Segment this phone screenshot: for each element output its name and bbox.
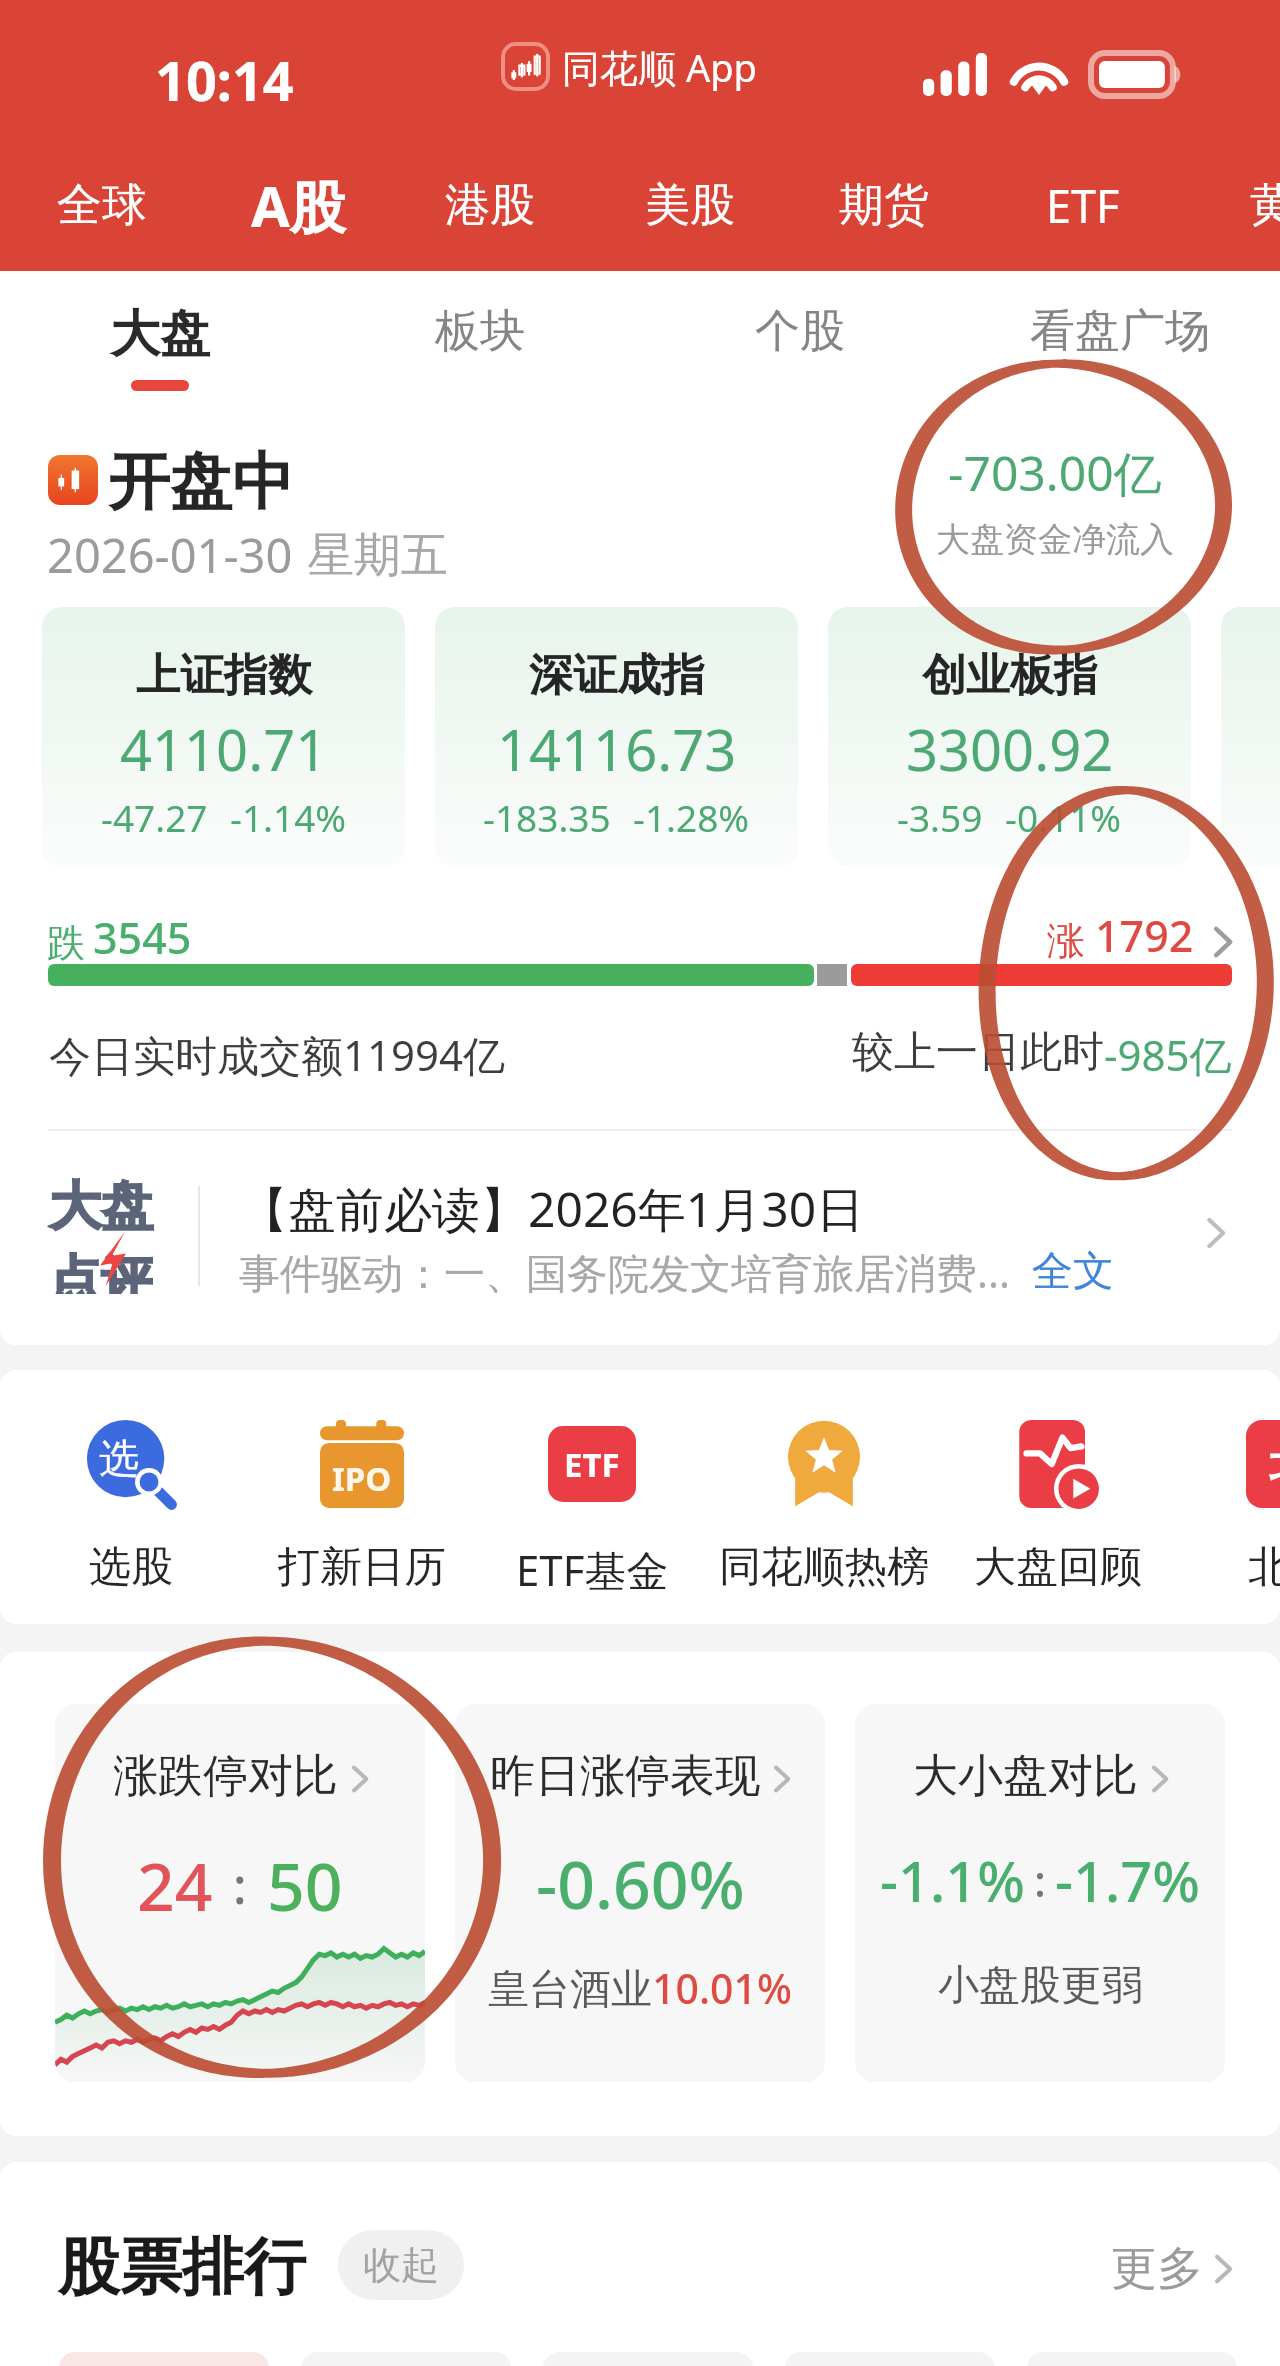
staticText: 14116.73 <box>497 711 737 787</box>
staticText: 开盘中 <box>108 443 294 521</box>
staticText: -1.7% <box>1055 1842 1200 1918</box>
staticText: 选股 <box>89 1541 173 1594</box>
button[interactable]: 上证指数 <box>42 607 405 867</box>
staticText: -0.60% <box>536 1838 745 1928</box>
staticText: 跌 <box>47 919 85 967</box>
staticText: 北 <box>1269 1438 1280 1491</box>
button[interactable]: 创业板指 <box>828 607 1191 867</box>
staticText: 小盘股更弱 <box>938 1960 1143 2012</box>
button[interactable]: 板块 <box>320 280 640 400</box>
button[interactable]: 港股 <box>415 158 565 252</box>
button[interactable]: 大盘 <box>0 280 320 400</box>
staticText: ETF <box>1046 175 1120 236</box>
staticText: 港股 <box>445 177 535 234</box>
staticText: 选 <box>99 1433 139 1483</box>
staticText: 1792 <box>1095 906 1194 965</box>
staticText: 4110.71 <box>120 711 328 787</box>
staticText: 大盘 <box>49 1174 153 1240</box>
staticText: ETF <box>564 1442 620 1487</box>
staticText: 大盘 <box>110 303 210 366</box>
button[interactable]: 大盘 <box>0 1160 1280 1315</box>
staticText: 大盘回顾 <box>974 1541 1142 1594</box>
staticText: 打新日历 <box>278 1541 446 1594</box>
staticText: 上证指数 <box>136 648 312 703</box>
staticText: 昨日涨停表现 <box>490 1748 760 1805</box>
staticText: A股 <box>251 167 346 243</box>
staticText: 股票排行 <box>58 2228 306 2306</box>
staticText: 创业板指 <box>922 648 1098 703</box>
button[interactable]: 全球 <box>27 158 177 252</box>
staticText: 星期五 <box>307 526 448 585</box>
button[interactable]: ETF <box>1008 158 1158 252</box>
staticText: 今日实时成交额11994亿 <box>49 1026 506 1083</box>
button[interactable]: 看盘广场 <box>960 280 1280 400</box>
staticText: 全文 <box>1032 1246 1114 1298</box>
staticText: 10.01% <box>652 1960 792 2016</box>
button[interactable]: 大盘回顾 <box>943 1409 1173 1599</box>
staticText: 同花顺热榜 <box>719 1541 929 1594</box>
staticText: 北交 <box>1248 1541 1280 1594</box>
staticText: 板块 <box>435 303 525 360</box>
button[interactable]: ETF <box>477 1409 707 1599</box>
staticText: 同花顺 App <box>562 41 757 93</box>
staticText: -1.28% <box>633 792 750 842</box>
button[interactable]: 美股 <box>615 158 765 252</box>
staticText: 深证成指 <box>529 648 705 703</box>
staticText: ETF基金 <box>516 1541 669 1598</box>
button[interactable]: 大小盘对比 <box>855 1704 1225 2082</box>
staticText: 看盘广场 <box>1030 303 1210 360</box>
button[interactable]: 北 <box>1175 1409 1280 1599</box>
staticText: -985亿 <box>1104 1026 1232 1083</box>
button[interactable]: 收起 <box>338 2230 464 2300</box>
staticText: -0.11% <box>1005 792 1122 842</box>
staticText: 更多 <box>1111 2240 1203 2298</box>
button[interactable]: 更多 <box>1050 2240 1232 2298</box>
staticText: 【盘前必读】2026年1月30日 <box>240 1176 865 1242</box>
staticText: -47.27 <box>101 792 208 842</box>
staticText: 10:14 <box>155 43 294 117</box>
staticText: 24 <box>137 1840 213 1930</box>
staticText: 收起 <box>363 2241 439 2289</box>
staticText: 3545 <box>93 908 192 967</box>
button[interactable]: IPO <box>247 1409 477 1599</box>
staticText: 个股 <box>755 303 845 360</box>
staticText: 期货 <box>839 177 929 234</box>
button[interactable]: 黄 <box>1197 158 1280 252</box>
button[interactable]: 选 <box>16 1409 246 1599</box>
staticText: 全球 <box>57 177 147 234</box>
button[interactable]: 昨日涨停表现 <box>455 1704 825 2082</box>
staticText: 2026-01-30 <box>47 523 293 587</box>
staticText: 涨跌停对比 <box>113 1748 338 1805</box>
staticText: 较上一日此时 <box>852 1026 1104 1079</box>
button[interactable]: 深证成指 <box>435 607 798 867</box>
staticText: -183.35 <box>483 792 611 842</box>
staticText: : <box>233 1851 247 1919</box>
staticText: IPO <box>332 1456 392 1501</box>
staticText: -3.59 <box>897 792 983 842</box>
button[interactable] <box>59 2352 269 2366</box>
staticText: -703.00亿 <box>948 440 1162 506</box>
staticText: : <box>1034 1850 1046 1910</box>
staticText: -1.1% <box>880 1842 1025 1918</box>
button[interactable]: A股 <box>218 158 378 252</box>
staticText: 皇台酒业 <box>488 1964 652 2016</box>
staticText: 大小盘对比 <box>913 1748 1138 1805</box>
staticText: 黄 <box>1250 177 1280 234</box>
staticText: 涨 <box>1047 917 1085 965</box>
button[interactable]: 个股 <box>640 280 960 400</box>
button[interactable]: 涨跌停对比 <box>55 1704 425 2082</box>
staticText: 50 <box>267 1840 343 1930</box>
staticText: 大盘资金净流入 <box>936 518 1174 561</box>
button[interactable]: 期货 <box>809 158 959 252</box>
staticText: -1.14% <box>230 792 347 842</box>
staticText: 点评 <box>49 1248 153 1294</box>
staticText: 美股 <box>645 177 735 234</box>
staticText: 事件驱动：一、国务院发文培育旅居消费... <box>239 1244 1010 1300</box>
staticText: 3300.92 <box>906 711 1114 787</box>
button[interactable]: 同花顺热榜 <box>709 1409 939 1599</box>
